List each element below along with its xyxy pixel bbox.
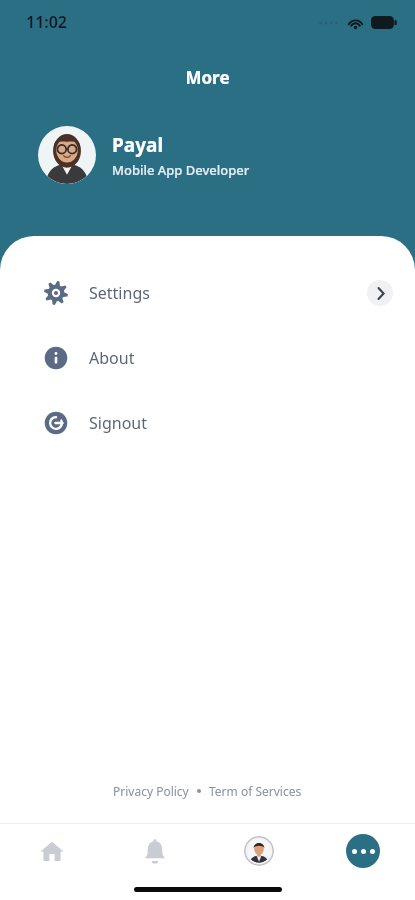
staticText: Settings [89, 282, 150, 304]
button[interactable]: Settings [0, 272, 415, 314]
staticText: Mobile App Developer [112, 161, 250, 179]
staticText: More [0, 66, 415, 89]
button[interactable]: About [0, 337, 415, 379]
button[interactable]: Home [0, 824, 103, 878]
staticText: Payal [112, 132, 164, 158]
button[interactable]: Signout [0, 402, 415, 444]
staticText: Signout [89, 412, 147, 434]
button[interactable]: Open Settings [367, 280, 393, 306]
button[interactable]: Payal [38, 126, 250, 184]
button[interactable]: Notifications [103, 824, 207, 878]
button[interactable]: More [311, 824, 415, 878]
button[interactable]: Term of Services [209, 783, 302, 799]
button[interactable]: Profile [207, 824, 311, 878]
staticText: 11:02 [26, 11, 68, 33]
staticText: About [89, 347, 135, 369]
button[interactable]: Privacy Policy [113, 783, 189, 799]
